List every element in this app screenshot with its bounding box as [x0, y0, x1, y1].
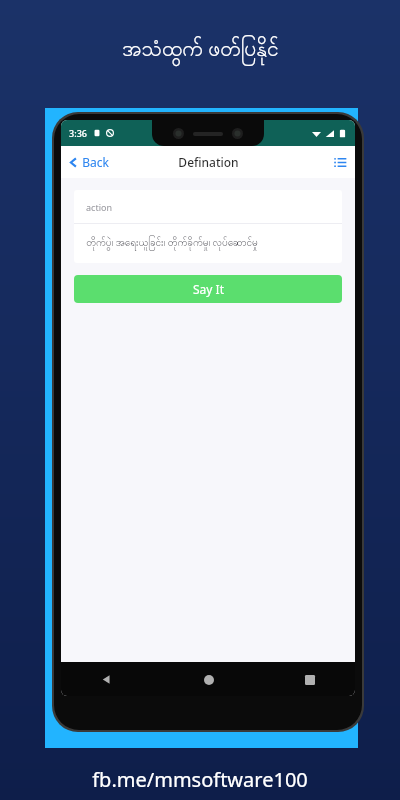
button[interactable]: Menu: [326, 148, 355, 177]
staticText: Say It: [193, 281, 224, 297]
staticText: fb.me/mmsoftware100: [92, 766, 308, 793]
staticText: Back: [82, 154, 109, 170]
staticText: Defination: [178, 154, 239, 170]
button[interactable]: Recents: [299, 669, 321, 691]
button[interactable]: Back: [61, 149, 117, 175]
staticText: အသံထွက် ဖတ်ပြနိုင်: [122, 34, 279, 67]
button[interactable]: Say It: [74, 275, 342, 303]
button[interactable]: action: [74, 190, 342, 263]
staticText: တိုက်ပွဲ၊ အရေးယူခြင်း၊ တိုက်ခိုက်မှု၊ လု…: [86, 235, 258, 251]
button[interactable]: Back: [95, 668, 118, 691]
staticText: 3:36: [69, 127, 87, 139]
button[interactable]: Home: [198, 669, 220, 691]
staticText: action: [86, 201, 112, 213]
